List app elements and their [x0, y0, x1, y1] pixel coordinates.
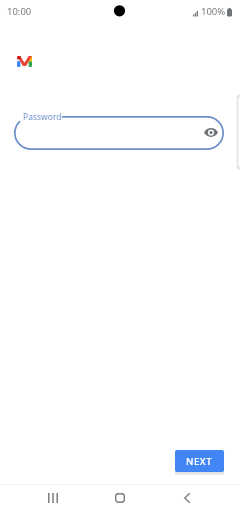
staticText: Password [23, 111, 62, 123]
staticText: 10:00 [7, 5, 32, 18]
button[interactable]: Show password [199, 120, 223, 144]
staticText: NEXT [186, 455, 213, 468]
button[interactable]: Password [14, 116, 224, 150]
button[interactable]: Back [167, 485, 207, 514]
staticText: 100% [201, 5, 226, 18]
button[interactable]: NEXT [175, 450, 224, 472]
button[interactable]: Home [100, 485, 140, 514]
button[interactable]: Recents [33, 485, 73, 514]
